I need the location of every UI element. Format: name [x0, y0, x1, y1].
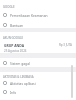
button[interactable]: Bantuan [0, 23, 76, 27]
button[interactable]: Pemeriksaan Keamanan [0, 13, 76, 17]
staticText: Info [10, 90, 17, 94]
staticText: GOOGLE [3, 5, 15, 9]
staticText: GRUP ANDA [4, 43, 25, 48]
staticText: Bantuan [10, 23, 24, 27]
button[interactable]: Aktivitas aplikasi [0, 81, 76, 85]
staticText: Sistem gagal [10, 61, 30, 65]
staticText: Aktivitas aplikasi [10, 81, 36, 85]
button[interactable]: GRUP ANDA [0, 43, 76, 53]
staticText: AKTIVITAS & LINIMASA [3, 75, 34, 79]
staticText: Rp 3 JUTA [59, 43, 72, 47]
staticText: AKUN GOOGLE [3, 36, 24, 40]
button[interactable]: Info [0, 90, 76, 94]
staticText: 25 Agustus 2024 [4, 49, 27, 53]
button[interactable]: Sistem gagal [0, 61, 76, 65]
staticText: Pemeriksaan Keamanan [10, 13, 48, 17]
